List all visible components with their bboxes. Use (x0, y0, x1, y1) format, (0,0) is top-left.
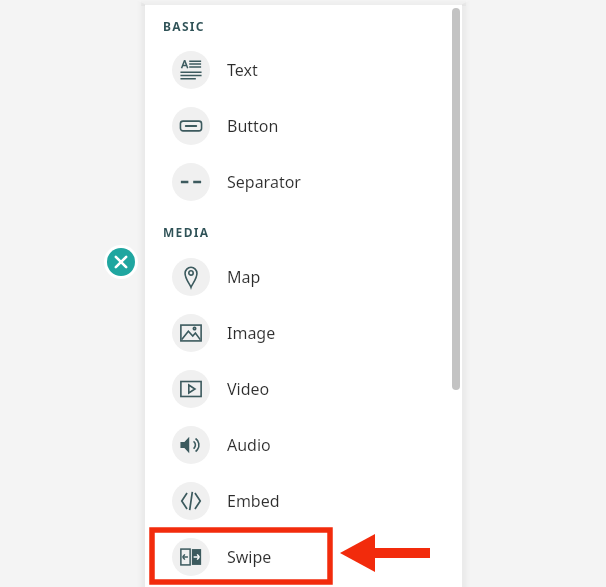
staticText: Swipe (227, 546, 272, 568)
button[interactable]: Button (146, 100, 461, 152)
button[interactable]: Separator (146, 156, 461, 208)
button[interactable]: Close (104, 245, 138, 279)
button[interactable]: Text (146, 44, 461, 96)
staticText: Map (227, 266, 261, 288)
staticText: Audio (227, 434, 271, 456)
staticText: Separator (227, 171, 301, 193)
staticText: BASIC (163, 18, 205, 34)
button[interactable]: Video (146, 363, 461, 415)
staticText: Text (227, 59, 258, 81)
staticText: Embed (227, 490, 280, 512)
staticText: MEDIA (163, 224, 210, 240)
button[interactable]: Audio (146, 419, 461, 471)
button[interactable]: Map (146, 251, 461, 303)
staticText: Video (227, 378, 270, 400)
button[interactable]: Image (146, 307, 461, 359)
button[interactable]: Swipe (146, 531, 461, 583)
button[interactable]: Embed (146, 475, 461, 527)
staticText: Image (227, 322, 276, 344)
staticText: Button (227, 115, 279, 137)
